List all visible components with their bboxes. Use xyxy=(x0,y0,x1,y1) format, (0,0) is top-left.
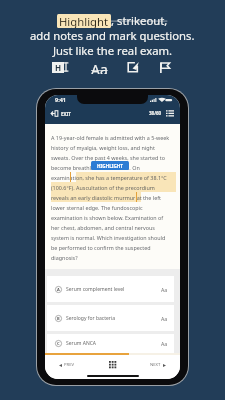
staticText: lower sternal edge. The fundoscopic xyxy=(51,204,143,211)
staticText: 9:41 xyxy=(55,96,66,103)
staticText: Just like the real exam. xyxy=(53,43,173,58)
button[interactable]: PREV xyxy=(57,360,76,370)
button[interactable]: Highlight xyxy=(52,61,69,73)
staticText: Aa xyxy=(161,340,168,347)
button[interactable]: NEXT xyxy=(148,360,168,370)
staticText: NEXT xyxy=(150,362,161,368)
staticText: Serum complement level xyxy=(66,286,125,293)
button[interactable]: 38/60 xyxy=(148,108,175,118)
staticText: diagnosis? xyxy=(51,254,78,261)
staticText: reveals an early diastolic murmur at the… xyxy=(51,194,162,201)
staticText: 38/60 xyxy=(149,110,162,116)
staticText: Serology for bacteria xyxy=(66,315,115,322)
staticText: Aa xyxy=(161,286,168,293)
staticText: H xyxy=(55,62,62,73)
staticText: her chest, abdomen, and central nervous xyxy=(51,224,155,231)
button[interactable]: Strikeout xyxy=(91,60,108,74)
button[interactable]: Flag question xyxy=(159,62,170,73)
button[interactable]: EXIT xyxy=(50,109,72,118)
button[interactable]: Add note xyxy=(127,61,139,73)
staticText: C xyxy=(57,341,60,346)
staticText: Serum ANCA xyxy=(66,340,97,347)
staticText: examination, she has a temperature of 38… xyxy=(51,174,167,181)
staticText: A xyxy=(57,287,60,292)
staticText: history of myalgia, weight loss, and nig… xyxy=(51,144,155,151)
staticText: , strikeout, xyxy=(111,13,168,28)
staticText: (100.6°F). Auscultation of the precordiu… xyxy=(51,184,155,191)
staticText: PREV xyxy=(64,362,74,368)
staticText: Highlight xyxy=(59,14,109,28)
button[interactable]: HIGHLIGHT xyxy=(91,161,129,170)
staticText: be performed to confirm the suspected xyxy=(51,244,151,251)
staticText: sweats. Over the past 4 weeks, she start… xyxy=(51,154,166,161)
staticText: add notes and mark questions. xyxy=(30,28,195,42)
button[interactable]: C xyxy=(47,334,174,353)
staticText: Aa xyxy=(161,315,168,322)
staticText: Aa xyxy=(91,60,108,74)
button[interactable]: B xyxy=(47,305,174,331)
staticText: examination is shown below. Examination … xyxy=(51,214,164,221)
staticText: EXIT xyxy=(61,111,71,117)
staticText: system is normal. Which investigation sh… xyxy=(51,234,166,241)
button[interactable]: A xyxy=(47,276,174,302)
button[interactable]: Question navigator xyxy=(107,359,118,370)
staticText: become breathless on exertion. On xyxy=(51,164,140,171)
staticText: A 19-year-old female is admitted with a … xyxy=(51,134,170,141)
staticText: HIGHLIGHT xyxy=(97,163,123,169)
staticText: B xyxy=(57,316,60,321)
